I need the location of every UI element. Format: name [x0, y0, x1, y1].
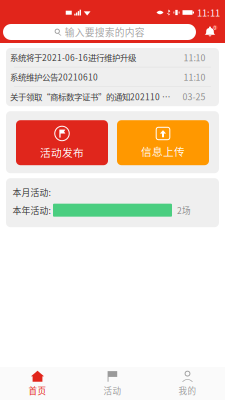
staticText: 首页 [28, 384, 46, 397]
button[interactable]: 关于领取“商标数字证书”的通知202110 ⋯ [6, 87, 219, 106]
staticText: 本月活动: [12, 186, 50, 198]
button[interactable]: 活动发布 [16, 120, 108, 165]
staticText: 本年活动: [12, 204, 50, 216]
staticText: 2场 [177, 204, 191, 216]
staticText: 活动 [103, 384, 121, 397]
button[interactable]: 信息上传 [117, 120, 209, 165]
button[interactable]: 我的 [150, 367, 225, 400]
button[interactable]: 通知 [201, 24, 219, 40]
staticText: 输入要搜索的内容 [65, 25, 145, 39]
staticText: 11:10 [183, 70, 205, 83]
staticText: 系统维护公告20210610 [10, 71, 98, 83]
staticText: 信息上传 [141, 143, 185, 159]
staticText: 活动发布 [40, 144, 84, 160]
staticText: 关于领取“商标数字证书”的通知202110 ⋯ [10, 90, 170, 103]
staticText: 11:10 [183, 51, 205, 64]
staticText: 0 [213, 24, 216, 31]
button[interactable]: 系统维护公告20210610 [6, 67, 219, 87]
button[interactable]: 系统将于2021-06-16进行维护升级 [6, 48, 219, 67]
staticText: 系统将于2021-06-16进行维护升级 [10, 51, 136, 63]
button[interactable]: 首页 [0, 367, 75, 400]
staticText: 我的 [178, 384, 196, 397]
staticText: 03-25 [182, 90, 205, 103]
button[interactable]: 输入要搜索的内容 [3, 24, 196, 40]
button[interactable]: 活动 [75, 367, 150, 400]
staticText: 11:11 [197, 6, 220, 19]
